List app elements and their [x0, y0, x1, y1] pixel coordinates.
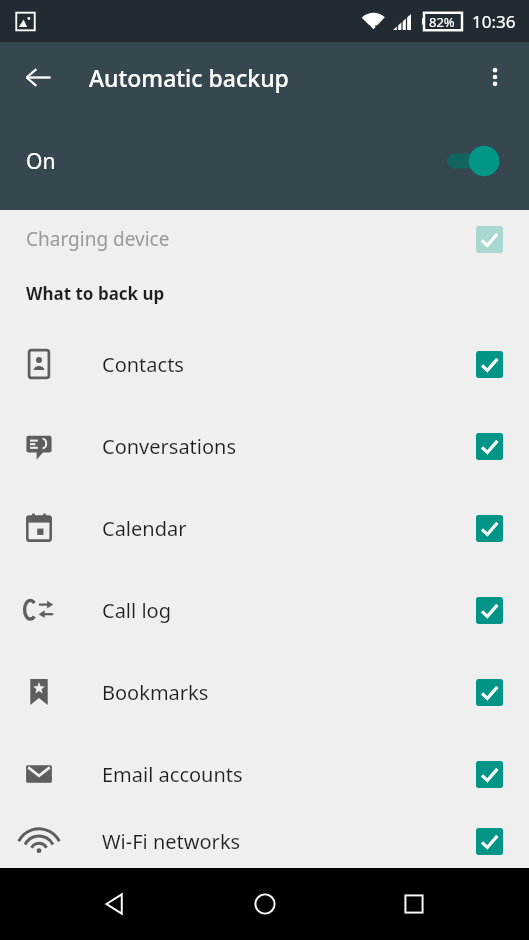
staticText: Contacts: [102, 351, 184, 378]
button[interactable]: Contacts: [0, 323, 529, 405]
staticText: Bookmarks: [102, 679, 209, 706]
staticText: Email accounts: [102, 761, 243, 788]
button[interactable]: Charging device: [0, 210, 529, 268]
staticText: Automatic backup: [89, 62, 289, 93]
staticText: Call log: [102, 597, 171, 624]
button[interactable]: Checked, disabled: [476, 226, 503, 253]
button[interactable]: Email accounts: [0, 733, 529, 815]
staticText: Wi-Fi networks: [102, 828, 241, 855]
button[interactable]: On: [0, 112, 529, 210]
button[interactable]: Checked: [476, 597, 503, 624]
button[interactable]: Back: [81, 870, 149, 938]
button[interactable]: Checked: [476, 351, 503, 378]
button[interactable]: More options: [469, 51, 521, 103]
button[interactable]: Checked: [476, 828, 503, 855]
button[interactable]: Navigate up: [10, 49, 66, 105]
button[interactable]: Home: [231, 870, 299, 938]
button[interactable]: Call log: [0, 569, 529, 651]
button[interactable]: Wi-Fi networks: [0, 815, 529, 868]
staticText: What to back up: [26, 282, 165, 305]
button[interactable]: Checked: [476, 433, 503, 460]
staticText: On: [26, 147, 56, 176]
staticText: Calendar: [102, 515, 187, 542]
button[interactable]: Calendar: [0, 487, 529, 569]
button[interactable]: Checked: [476, 761, 503, 788]
staticText: 10:36: [472, 10, 516, 33]
button[interactable]: Checked: [476, 515, 503, 542]
button[interactable]: Bookmarks: [0, 651, 529, 733]
button[interactable]: Conversations: [0, 405, 529, 487]
button[interactable]: Checked: [476, 679, 503, 706]
button[interactable]: Recent apps: [380, 870, 448, 938]
staticText: 82%: [429, 13, 455, 31]
staticText: Charging device: [26, 226, 170, 252]
staticText: Conversations: [102, 433, 237, 460]
